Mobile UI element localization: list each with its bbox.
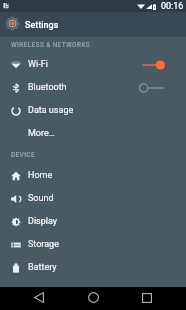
button[interactable]: Home bbox=[82, 287, 104, 308]
button[interactable]: Recent apps bbox=[136, 287, 158, 308]
button[interactable]: Sound bbox=[0, 187, 186, 210]
button[interactable]: Battery bbox=[0, 256, 186, 279]
staticText: Storage bbox=[28, 239, 59, 250]
staticText: Home bbox=[28, 170, 53, 181]
button[interactable]: Wi-Fi bbox=[0, 53, 186, 76]
button[interactable]: Display bbox=[0, 210, 186, 233]
staticText: Data usage bbox=[28, 105, 74, 116]
staticText: Wi-Fi bbox=[28, 59, 48, 70]
staticText: Settings bbox=[25, 20, 59, 31]
button[interactable]: Bluetooth bbox=[0, 76, 186, 99]
staticText: More… bbox=[28, 128, 55, 139]
button[interactable]: Storage bbox=[0, 233, 186, 256]
staticText: 00:16 bbox=[161, 1, 184, 12]
button[interactable]: Data usage bbox=[0, 99, 186, 122]
button[interactable]: Home bbox=[0, 164, 186, 187]
staticText: Bluetooth bbox=[28, 82, 67, 93]
staticText: Battery bbox=[28, 262, 57, 273]
staticText: WIRELESS & NETWORKS bbox=[11, 41, 91, 49]
staticText: DEVICE bbox=[11, 151, 35, 159]
staticText: Sound bbox=[28, 193, 54, 204]
staticText: Display bbox=[28, 216, 58, 227]
button[interactable]: More… bbox=[0, 122, 186, 145]
button[interactable]: Back bbox=[28, 287, 50, 308]
